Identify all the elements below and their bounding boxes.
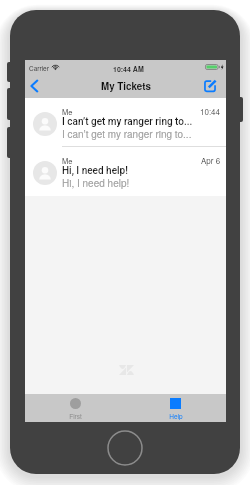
staticText: I can’t get my ranger ring to... [62,116,193,128]
button[interactable]: First [25,394,125,422]
staticText: Hi, I need help! [62,176,193,190]
staticText: Help [169,412,183,421]
staticText: Carrier [29,64,49,73]
staticText: I can’t get my ranger ring to... [62,127,193,141]
staticText: Me [62,106,73,117]
staticText: Apr 6 [201,155,221,166]
button[interactable]: Me [25,147,226,196]
button[interactable]: Help [125,394,226,422]
staticText: Me [62,155,73,166]
staticText: 10:44 [200,106,221,117]
button[interactable]: Me [25,98,226,147]
button[interactable]: Back [26,76,46,96]
staticText: Hi, I need help! [62,165,193,177]
button[interactable]: Compose new ticket [204,80,216,92]
staticText: My Tickets [101,79,151,93]
staticText: First [69,412,82,421]
staticText: 10:44 AM [113,64,144,74]
